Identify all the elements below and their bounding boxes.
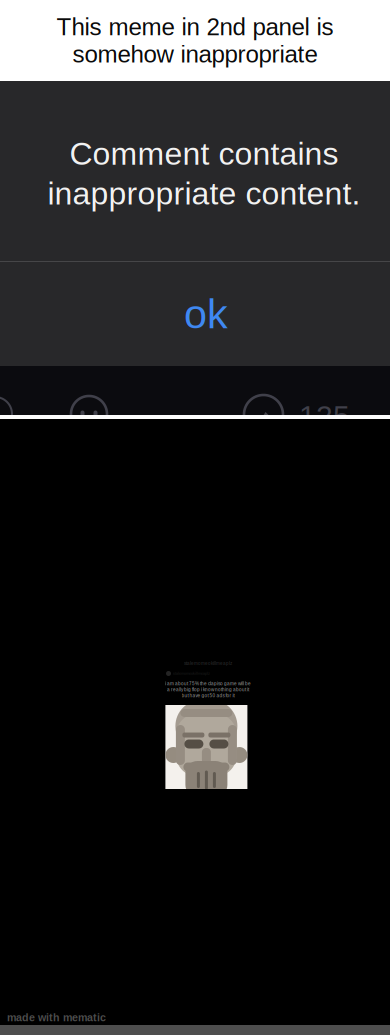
staticText: a really big flop i know nothing about i… [167,687,249,692]
staticText: 125 [299,399,350,432]
staticText: stalemomeokillmeaplz [173,671,210,676]
staticText: inappropriate content. [47,175,360,211]
staticText: somehow inappropriate [72,41,317,68]
staticText: ok [184,291,228,337]
staticText: Comment contains [69,136,338,172]
staticText: This meme in 2nd panel is [56,13,333,40]
staticText: made with mematic [7,1011,106,1023]
staticText: i am about 75% the clapiso game will be [165,681,251,686]
button[interactable]: ok [0,262,390,366]
staticText: stalemomeokillmeaplz [184,661,232,666]
staticText: but have got 50 ads for it [181,693,234,698]
